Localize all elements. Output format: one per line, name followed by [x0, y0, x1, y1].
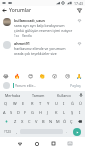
button[interactable]: Klavye	[62, 137, 78, 150]
staticText: D	[17, 110, 20, 115]
button[interactable]: ?123	[2, 127, 13, 136]
button[interactable]: G	[29, 108, 36, 117]
button[interactable]: Ö	[61, 117, 68, 126]
staticText: Ğ	[71, 101, 74, 106]
button[interactable]: C	[26, 117, 33, 126]
staticText: 😍	[28, 73, 34, 79]
button[interactable]: E	[19, 99, 28, 108]
button[interactable]: R	[28, 99, 36, 108]
staticText: Kullanıcı	[57, 93, 72, 98]
button[interactable]: 😮	[51, 72, 58, 79]
button[interactable]: A	[1, 108, 8, 117]
staticText: T	[39, 101, 42, 106]
button[interactable]: N	[47, 117, 54, 126]
button[interactable]: Paylaş	[69, 82, 82, 89]
staticText: V	[35, 119, 38, 124]
staticText: kullanıcıadı_uzun	[14, 18, 45, 23]
staticText: U	[55, 101, 58, 106]
staticText: Ş	[71, 110, 74, 115]
staticText: L	[63, 110, 66, 115]
staticText: Ü	[79, 101, 82, 106]
button[interactable]: Kullanıcı	[51, 91, 77, 99]
staticText: 👏	[39, 73, 46, 79]
button[interactable]: Sesle yaz	[77, 91, 85, 99]
staticText: Yanıtla	[22, 34, 32, 38]
button[interactable]: 🔥	[14, 72, 21, 79]
staticText: 🙏	[76, 73, 83, 79]
staticText: ,	[16, 129, 17, 134]
staticText: 😢	[65, 73, 71, 79]
button[interactable]: Beğen	[77, 18, 82, 23]
button[interactable]: S	[8, 108, 15, 117]
button[interactable]: J	[44, 108, 52, 117]
staticText: sana ayrı ayrı kalp bırakıyorum çünkü gü…	[14, 23, 75, 33]
staticText: H	[39, 110, 42, 115]
button[interactable]: Beğen	[77, 41, 82, 46]
button[interactable]: Shift	[1, 117, 11, 126]
staticText: Merhaba	[5, 93, 21, 98]
staticText: I	[79, 110, 81, 115]
button[interactable]: Geri sil	[75, 117, 84, 126]
staticText: ?123	[4, 130, 11, 134]
button[interactable]: Filtre	[75, 6, 84, 15]
button[interactable]: Ş	[68, 108, 76, 117]
button[interactable]: 😂	[2, 72, 9, 79]
button[interactable]: T	[36, 99, 44, 108]
button[interactable]: F	[22, 108, 29, 117]
staticText: A	[3, 110, 6, 115]
button[interactable]: ahmet91	[0, 38, 85, 56]
button[interactable]: Tamam	[25, 91, 51, 99]
button[interactable]: I	[60, 99, 68, 108]
button[interactable]: 😍	[27, 72, 34, 79]
button[interactable]: Geri	[11, 137, 28, 150]
staticText: X	[21, 119, 24, 124]
button[interactable]: Gönder	[73, 128, 81, 136]
button[interactable]: D	[15, 108, 22, 117]
button[interactable]: W	[10, 99, 19, 108]
button[interactable]: M	[54, 117, 61, 126]
button[interactable]: L	[60, 108, 68, 117]
button[interactable]: Merhaba	[0, 91, 25, 99]
button[interactable]: Ğ	[68, 99, 76, 108]
staticText: W	[13, 101, 17, 106]
staticText: N	[49, 119, 53, 124]
button[interactable]: H	[36, 108, 44, 117]
staticText: K	[55, 110, 58, 115]
button[interactable]: U	[52, 99, 60, 108]
staticText: Ç	[70, 119, 73, 124]
button[interactable]: Z	[11, 117, 19, 126]
staticText: M	[56, 119, 60, 124]
button[interactable]: K	[52, 108, 60, 117]
button[interactable]: I	[76, 108, 84, 117]
button[interactable]: Ç	[68, 117, 75, 126]
button[interactable]: Son uygulamalar	[45, 137, 62, 150]
button[interactable]: Yanıtla	[22, 34, 32, 38]
staticText: 😮	[52, 73, 58, 79]
button[interactable]: ,	[13, 127, 20, 136]
staticText: Y	[47, 101, 50, 106]
button[interactable]: kullanıcıadı_uzun	[0, 15, 85, 38]
button[interactable]: Ü	[76, 99, 84, 108]
staticText: F	[24, 110, 27, 115]
button[interactable]: Q	[1, 99, 10, 108]
staticText: Tamam	[32, 93, 45, 98]
staticText: Yorum ekle...	[15, 83, 69, 88]
staticText: Ö	[63, 119, 67, 124]
button[interactable]: X	[19, 117, 26, 126]
button[interactable]: Y	[44, 99, 52, 108]
button[interactable]: 👏	[39, 72, 46, 79]
staticText: I	[63, 101, 65, 106]
staticText: Q	[4, 101, 8, 106]
button[interactable]: Ana ekran	[28, 137, 45, 150]
button[interactable]: 🙏	[76, 72, 83, 79]
staticText: 17:43	[74, 1, 83, 6]
button[interactable]: Geri	[0, 6, 9, 15]
staticText: E	[22, 101, 25, 106]
staticText: C	[28, 119, 31, 124]
staticText: B	[42, 119, 45, 124]
button[interactable]: B	[40, 117, 47, 126]
button[interactable]: V	[33, 117, 40, 126]
button[interactable]: 😢	[64, 72, 71, 79]
